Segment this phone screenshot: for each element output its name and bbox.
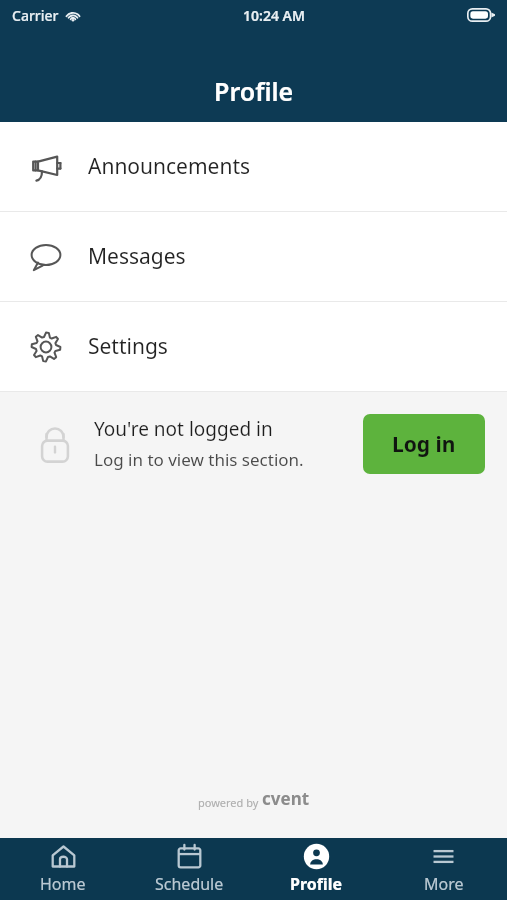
- button[interactable]: Profile: [253, 838, 380, 900]
- staticText: Log in to view this section.: [94, 448, 304, 471]
- staticText: You're not logged in: [94, 416, 273, 442]
- staticText: Carrier: [12, 6, 59, 25]
- button[interactable]: Schedule: [126, 838, 253, 900]
- button[interactable]: Announcements: [0, 122, 507, 211]
- staticText: Settings: [88, 332, 168, 361]
- staticText: Profile: [290, 873, 343, 895]
- staticText: Profile: [214, 74, 294, 108]
- button[interactable]: Home: [0, 838, 126, 900]
- staticText: More: [424, 873, 464, 895]
- staticText: Messages: [88, 242, 186, 271]
- button[interactable]: Messages: [0, 212, 507, 301]
- staticText: 10:24 AM: [243, 6, 305, 25]
- button[interactable]: More: [380, 838, 507, 900]
- staticText: Announcements: [88, 152, 251, 181]
- staticText: Schedule: [155, 873, 224, 895]
- staticText: cvent: [262, 787, 310, 810]
- button[interactable]: Log in: [363, 414, 485, 474]
- button[interactable]: Settings: [0, 302, 507, 391]
- staticText: Home: [40, 873, 86, 895]
- staticText: powered by: [198, 795, 262, 810]
- staticText: Log in: [392, 430, 456, 459]
